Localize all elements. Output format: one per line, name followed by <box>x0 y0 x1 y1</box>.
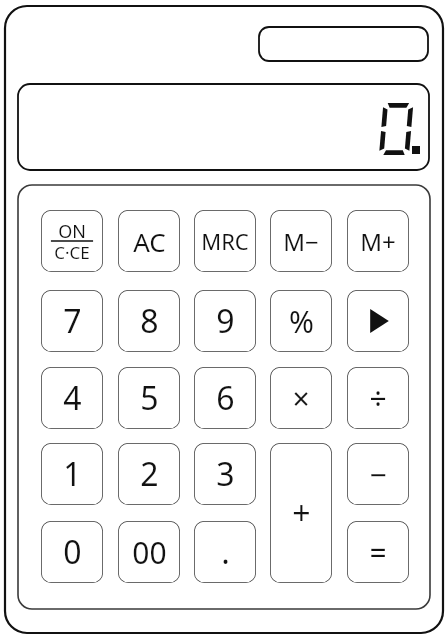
button[interactable]: 0 <box>41 521 103 583</box>
staticText: ÷ <box>369 378 387 419</box>
button[interactable]: 2 <box>118 443 180 505</box>
button[interactable]: ÷ <box>347 367 409 429</box>
staticText: 2 <box>140 452 159 496</box>
staticText: × <box>292 378 310 419</box>
button[interactable]: × <box>270 367 332 429</box>
staticText: − <box>369 454 387 495</box>
staticText: 1 <box>63 452 82 496</box>
staticText: MRC <box>201 226 249 256</box>
staticText: 5 <box>140 376 159 420</box>
button[interactable]: 5 <box>118 367 180 429</box>
staticText: M− <box>283 225 319 258</box>
button[interactable]: + <box>270 443 332 583</box>
button[interactable]: 4 <box>41 367 103 429</box>
staticText: 6 <box>216 376 235 420</box>
staticText: 3 <box>216 452 235 496</box>
staticText: 00 <box>132 532 167 573</box>
button[interactable]: 7 <box>41 290 103 352</box>
button[interactable]: M+ <box>347 210 409 272</box>
staticText: 7 <box>63 299 82 343</box>
staticText: % <box>289 301 314 342</box>
staticText: 0 <box>63 530 82 574</box>
button[interactable]: . <box>194 521 256 583</box>
staticText: . <box>221 530 230 574</box>
staticText: M+ <box>360 225 396 258</box>
button[interactable]: Play <box>347 290 409 352</box>
button[interactable]: 00 <box>118 521 180 583</box>
button[interactable]: = <box>347 521 409 583</box>
button[interactable]: M− <box>270 210 332 272</box>
staticText: C·CE <box>54 241 90 264</box>
button[interactable]: 6 <box>194 367 256 429</box>
button[interactable]: % <box>270 290 332 352</box>
staticText: = <box>369 532 387 573</box>
staticText: 9 <box>216 299 235 343</box>
button[interactable]: − <box>347 443 409 505</box>
button[interactable]: AC <box>118 210 180 272</box>
staticText: AC <box>133 224 166 259</box>
button[interactable]: 3 <box>194 443 256 505</box>
button[interactable]: 1 <box>41 443 103 505</box>
staticText: 8 <box>140 299 159 343</box>
staticText: 4 <box>63 376 82 420</box>
button[interactable]: 9 <box>194 290 256 352</box>
button[interactable]: 8 <box>118 290 180 352</box>
button[interactable]: MRC <box>194 210 256 272</box>
button[interactable]: ON <box>41 210 103 272</box>
staticText: ON <box>58 219 86 244</box>
staticText: + <box>292 491 311 535</box>
